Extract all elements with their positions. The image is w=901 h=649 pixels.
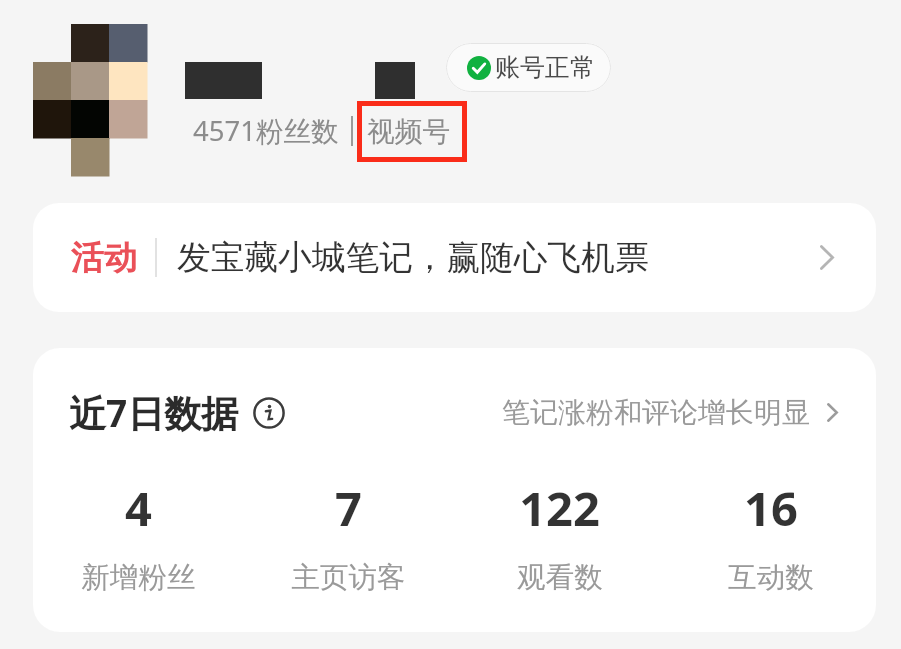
button[interactable]: Profile avatar <box>33 24 147 176</box>
staticText: 7 <box>335 476 362 540</box>
staticText: 新增粉丝 <box>81 559 196 595</box>
staticText: 122 <box>519 476 600 540</box>
button[interactable]: 活动 <box>33 203 876 312</box>
button[interactable]: Info <box>253 397 285 429</box>
staticText: 观看数 <box>517 559 603 595</box>
button[interactable]: 账号正常 <box>446 43 611 92</box>
staticText: 4571粉丝数 <box>193 112 339 150</box>
button[interactable]: 4571粉丝数 <box>193 110 339 152</box>
button[interactable]: 笔记涨粉和评论增长明显 <box>502 395 838 430</box>
staticText: 活动 <box>71 237 137 279</box>
staticText: 笔记涨粉和评论增长明显 <box>502 395 810 430</box>
staticText: 近7日数据 <box>69 387 239 438</box>
button[interactable]: 7 <box>243 476 454 595</box>
staticText: 发宝藏小城笔记，赢随心飞机票 <box>177 237 649 279</box>
staticText: 主页访客 <box>291 559 406 595</box>
button[interactable]: 16 <box>665 476 876 595</box>
staticText: 账号正常 <box>495 52 595 83</box>
staticText: 4 <box>125 476 152 540</box>
button[interactable]: 视频号 <box>357 101 467 162</box>
staticText: 互动数 <box>728 559 814 595</box>
button[interactable]: 122 <box>454 476 665 595</box>
staticText: 视频号 <box>367 114 451 149</box>
staticText: 16 <box>744 476 798 540</box>
button[interactable]: 4 <box>33 476 243 595</box>
